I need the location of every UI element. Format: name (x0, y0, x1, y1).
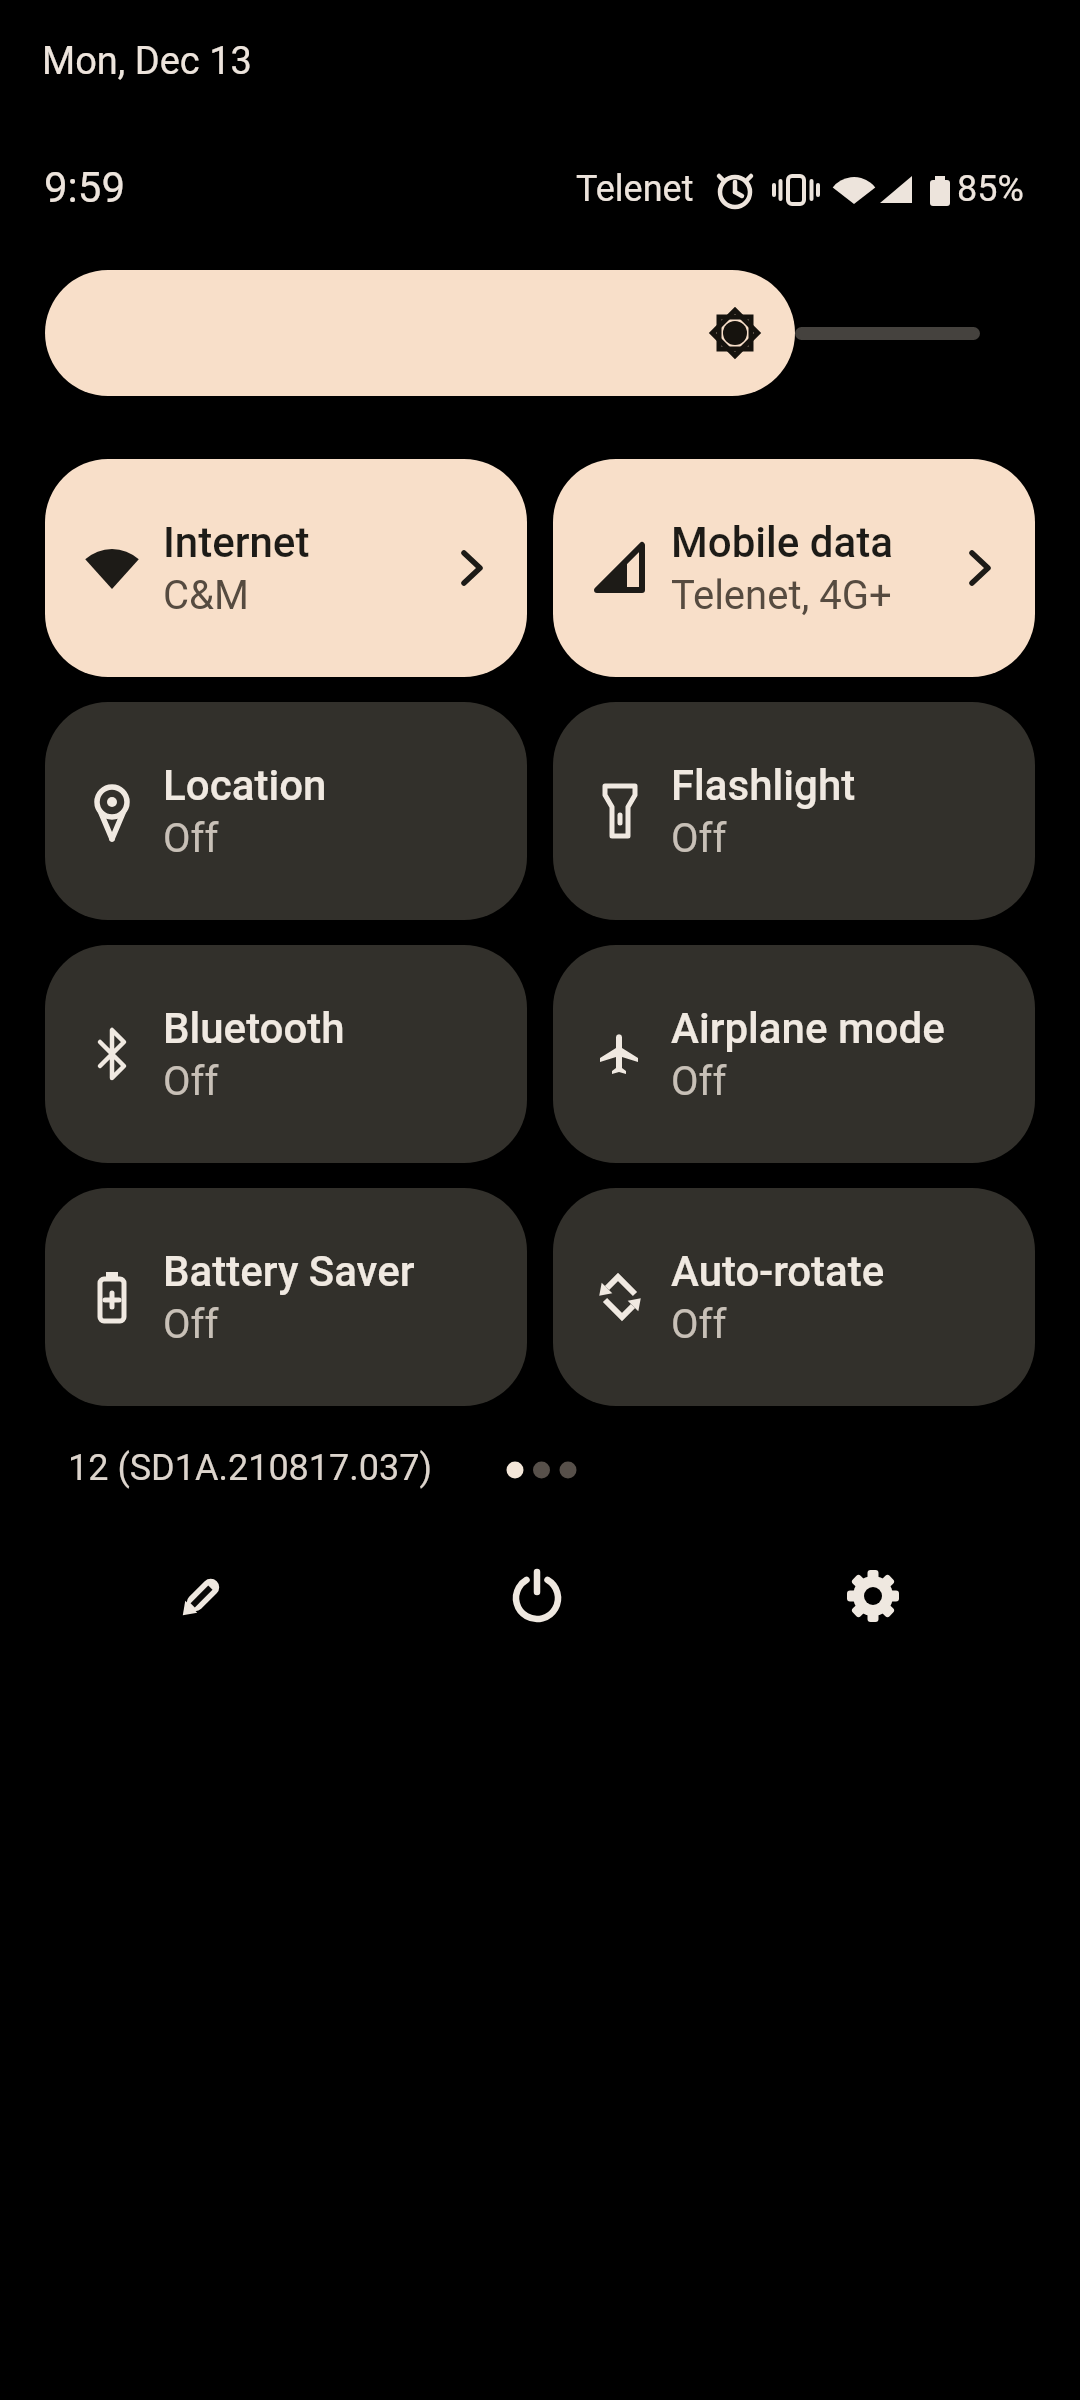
staticText: 9:59 (44, 163, 125, 212)
button[interactable]: Battery Saver (45, 1188, 527, 1406)
button[interactable]: Mobile data (553, 459, 1035, 677)
staticText: 12 (SD1A.210817.037) (68, 1447, 433, 1489)
button[interactable]: Auto-rotate (553, 1188, 1035, 1406)
staticText: Battery Saver (163, 1247, 415, 1296)
staticText: C&M (163, 572, 249, 619)
staticText: Telenet, 4G+ (671, 572, 892, 619)
button[interactable] (489, 1548, 585, 1644)
staticText: Off (671, 1058, 727, 1105)
staticText: Off (671, 1301, 727, 1348)
button[interactable] (825, 1548, 921, 1644)
button[interactable]: Airplane mode (553, 945, 1035, 1163)
button[interactable]: Flashlight (553, 702, 1035, 920)
staticText: Telenet (576, 168, 694, 210)
button[interactable] (156, 1546, 252, 1642)
button[interactable] (45, 270, 795, 396)
staticText: Mon, Dec 13 (42, 39, 252, 84)
staticText: Off (163, 815, 219, 862)
staticText: Off (671, 815, 727, 862)
staticText: Internet (163, 518, 310, 567)
staticText: Auto-rotate (671, 1247, 885, 1296)
button[interactable]: Internet (45, 459, 527, 677)
staticText: Location (163, 761, 327, 810)
button[interactable]: Location (45, 702, 527, 920)
button[interactable]: Bluetooth (45, 945, 527, 1163)
staticText: Off (163, 1058, 219, 1105)
staticText: Bluetooth (163, 1004, 345, 1053)
staticText: Mobile data (671, 518, 894, 567)
staticText: Flashlight (671, 761, 856, 810)
staticText: Airplane mode (671, 1004, 945, 1053)
staticText: Off (163, 1301, 219, 1348)
staticText: 85% (957, 168, 1024, 210)
